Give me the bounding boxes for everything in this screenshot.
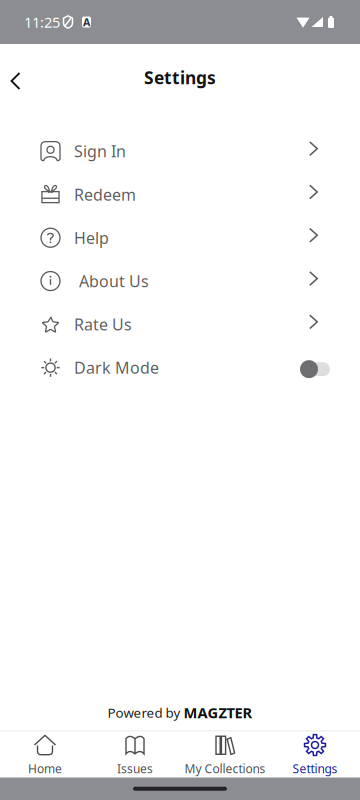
button[interactable]: Settings (270, 730, 360, 777)
button[interactable]: About Us (0, 259, 360, 303)
staticText: Settings (144, 66, 216, 89)
staticText: Rate Us (74, 314, 132, 335)
button[interactable]: Redeem (0, 173, 360, 216)
staticText: Help (74, 227, 109, 248)
staticText: Dark Mode (74, 357, 159, 378)
button[interactable]: Help (0, 216, 360, 259)
button[interactable]: Sign In (0, 129, 360, 173)
staticText: About Us (79, 270, 149, 292)
staticText: A (83, 15, 90, 29)
staticText: Sign In (74, 140, 126, 162)
button[interactable]: My Collections (180, 730, 270, 777)
staticText: Powered by (107, 704, 183, 721)
button[interactable]: Rate Us (0, 303, 360, 346)
staticText: My Collections (184, 760, 265, 776)
button[interactable]: Back (0, 44, 31, 100)
staticText: MAGZTER (183, 703, 252, 722)
button[interactable]: Issues (90, 730, 180, 777)
staticText: Home (28, 760, 62, 776)
staticText: Redeem (74, 184, 136, 205)
button[interactable]: Dark Mode (0, 346, 360, 389)
button[interactable]: Home (0, 730, 90, 777)
staticText: Settings (292, 760, 337, 776)
staticText: Issues (117, 760, 153, 776)
staticText: 11:25 (24, 12, 60, 32)
